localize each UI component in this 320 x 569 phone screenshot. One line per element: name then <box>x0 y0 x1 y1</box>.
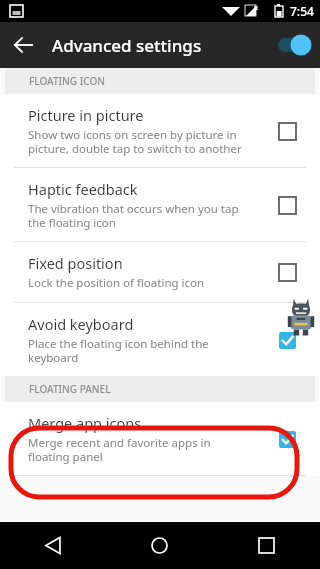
button[interactable]: Unchecked <box>272 116 302 146</box>
button[interactable]: Picture in picture <box>0 94 320 167</box>
staticText: Show two icons on screen by picture in p… <box>28 127 242 156</box>
staticText: Picture in picture <box>28 105 144 125</box>
button[interactable]: Avoid keyboard <box>0 303 320 376</box>
button[interactable]: Back <box>0 22 46 68</box>
button[interactable]: Fixed position <box>0 242 320 302</box>
staticText: Lock the position of floating icon <box>28 275 205 291</box>
staticText: Merge recent and favorite apps in floati… <box>28 435 211 464</box>
staticText: Merge app icons <box>28 413 142 433</box>
button[interactable]: Haptic feedback <box>0 168 320 241</box>
staticText: R <box>254 4 258 12</box>
staticText: Haptic feedback <box>28 179 138 199</box>
button[interactable]: Checked <box>272 424 302 454</box>
button[interactable]: Enable service toggle <box>268 22 320 68</box>
button[interactable]: Unchecked <box>272 190 302 220</box>
staticText: Avoid keyboard <box>28 314 134 334</box>
button[interactable]: Checked <box>272 325 302 355</box>
staticText: FLOATING PANEL <box>29 382 111 396</box>
staticText: Place the floating icon behind the keybo… <box>28 336 209 365</box>
button[interactable]: Back <box>0 522 106 569</box>
button[interactable]: Home <box>106 522 213 569</box>
staticText: Advanced settings <box>52 34 268 57</box>
button[interactable]: Unchecked <box>272 257 302 287</box>
staticText: The vibration that occurs when you tap t… <box>28 201 239 230</box>
staticText: 7:54 <box>290 3 314 19</box>
button[interactable]: Merge app icons <box>0 402 320 475</box>
button[interactable]: Recent apps <box>213 522 320 569</box>
staticText: FLOATING ICON <box>29 74 105 88</box>
staticText: Fixed position <box>28 253 123 273</box>
